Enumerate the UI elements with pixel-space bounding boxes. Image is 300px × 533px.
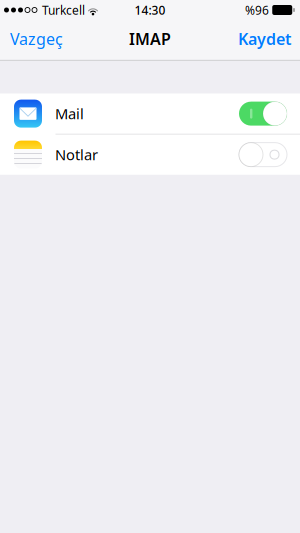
staticText: Vazgeç (10, 28, 63, 49)
button[interactable]: Notlar (0, 134, 300, 175)
button[interactable]: Kaydet (228, 18, 300, 62)
button[interactable]: Mail (0, 93, 300, 134)
staticText: %96 (245, 2, 269, 18)
staticText: Kaydet (238, 28, 291, 49)
staticText: 14:30 (134, 2, 165, 18)
staticText: Turkcell (42, 2, 85, 18)
staticText: Notlar (55, 145, 98, 164)
button[interactable]: Vazgeç (0, 18, 73, 62)
staticText: Mail (55, 104, 84, 123)
staticText: IMAP (129, 28, 171, 49)
